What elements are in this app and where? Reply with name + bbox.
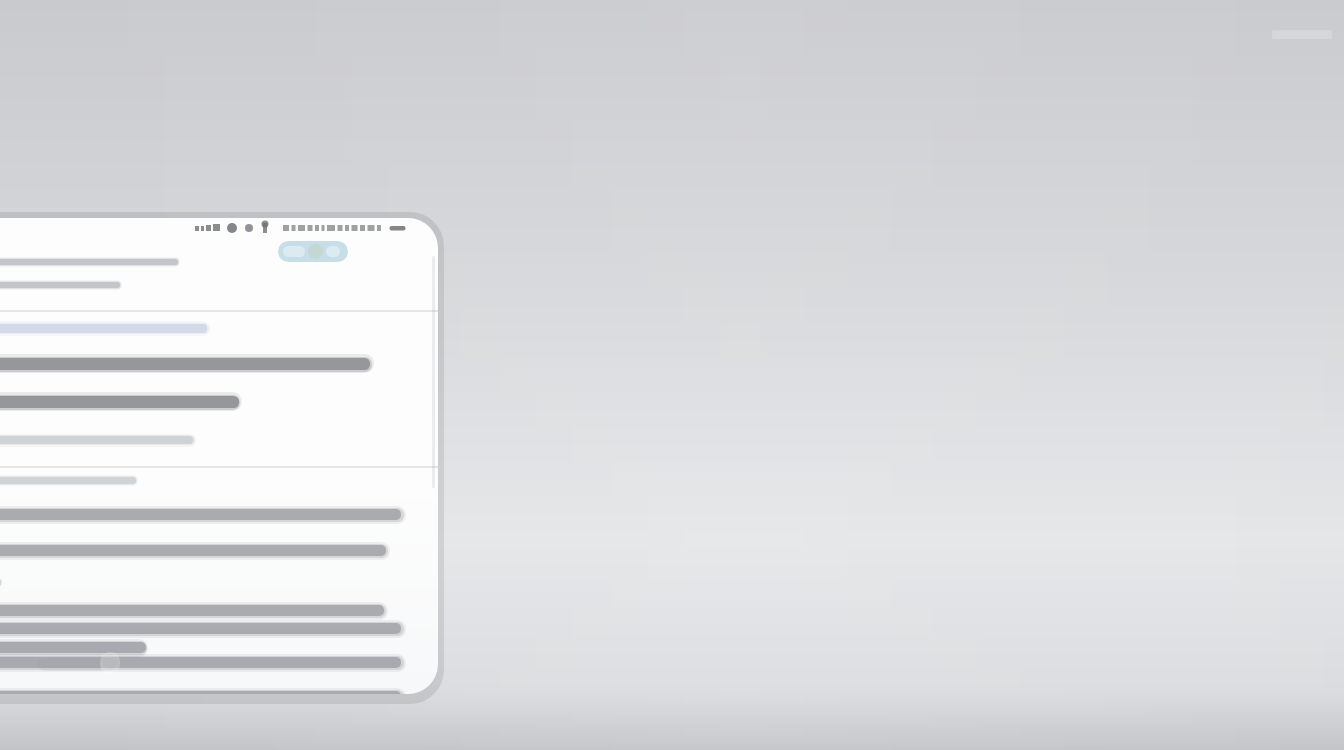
- button[interactable]: Display mode: [278, 241, 348, 262]
- button[interactable]: Home: [38, 658, 120, 671]
